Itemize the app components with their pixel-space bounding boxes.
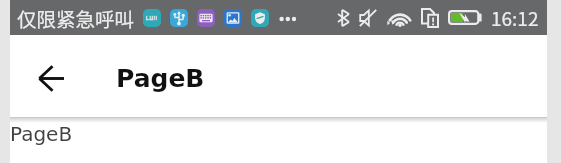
staticText: PageB bbox=[116, 64, 205, 93]
button[interactable]: Back bbox=[31, 58, 71, 98]
staticText: 16:12 bbox=[491, 4, 539, 32]
staticText: PageB bbox=[10, 122, 73, 145]
staticText: 仅限紧急呼叫 bbox=[17, 4, 135, 32]
